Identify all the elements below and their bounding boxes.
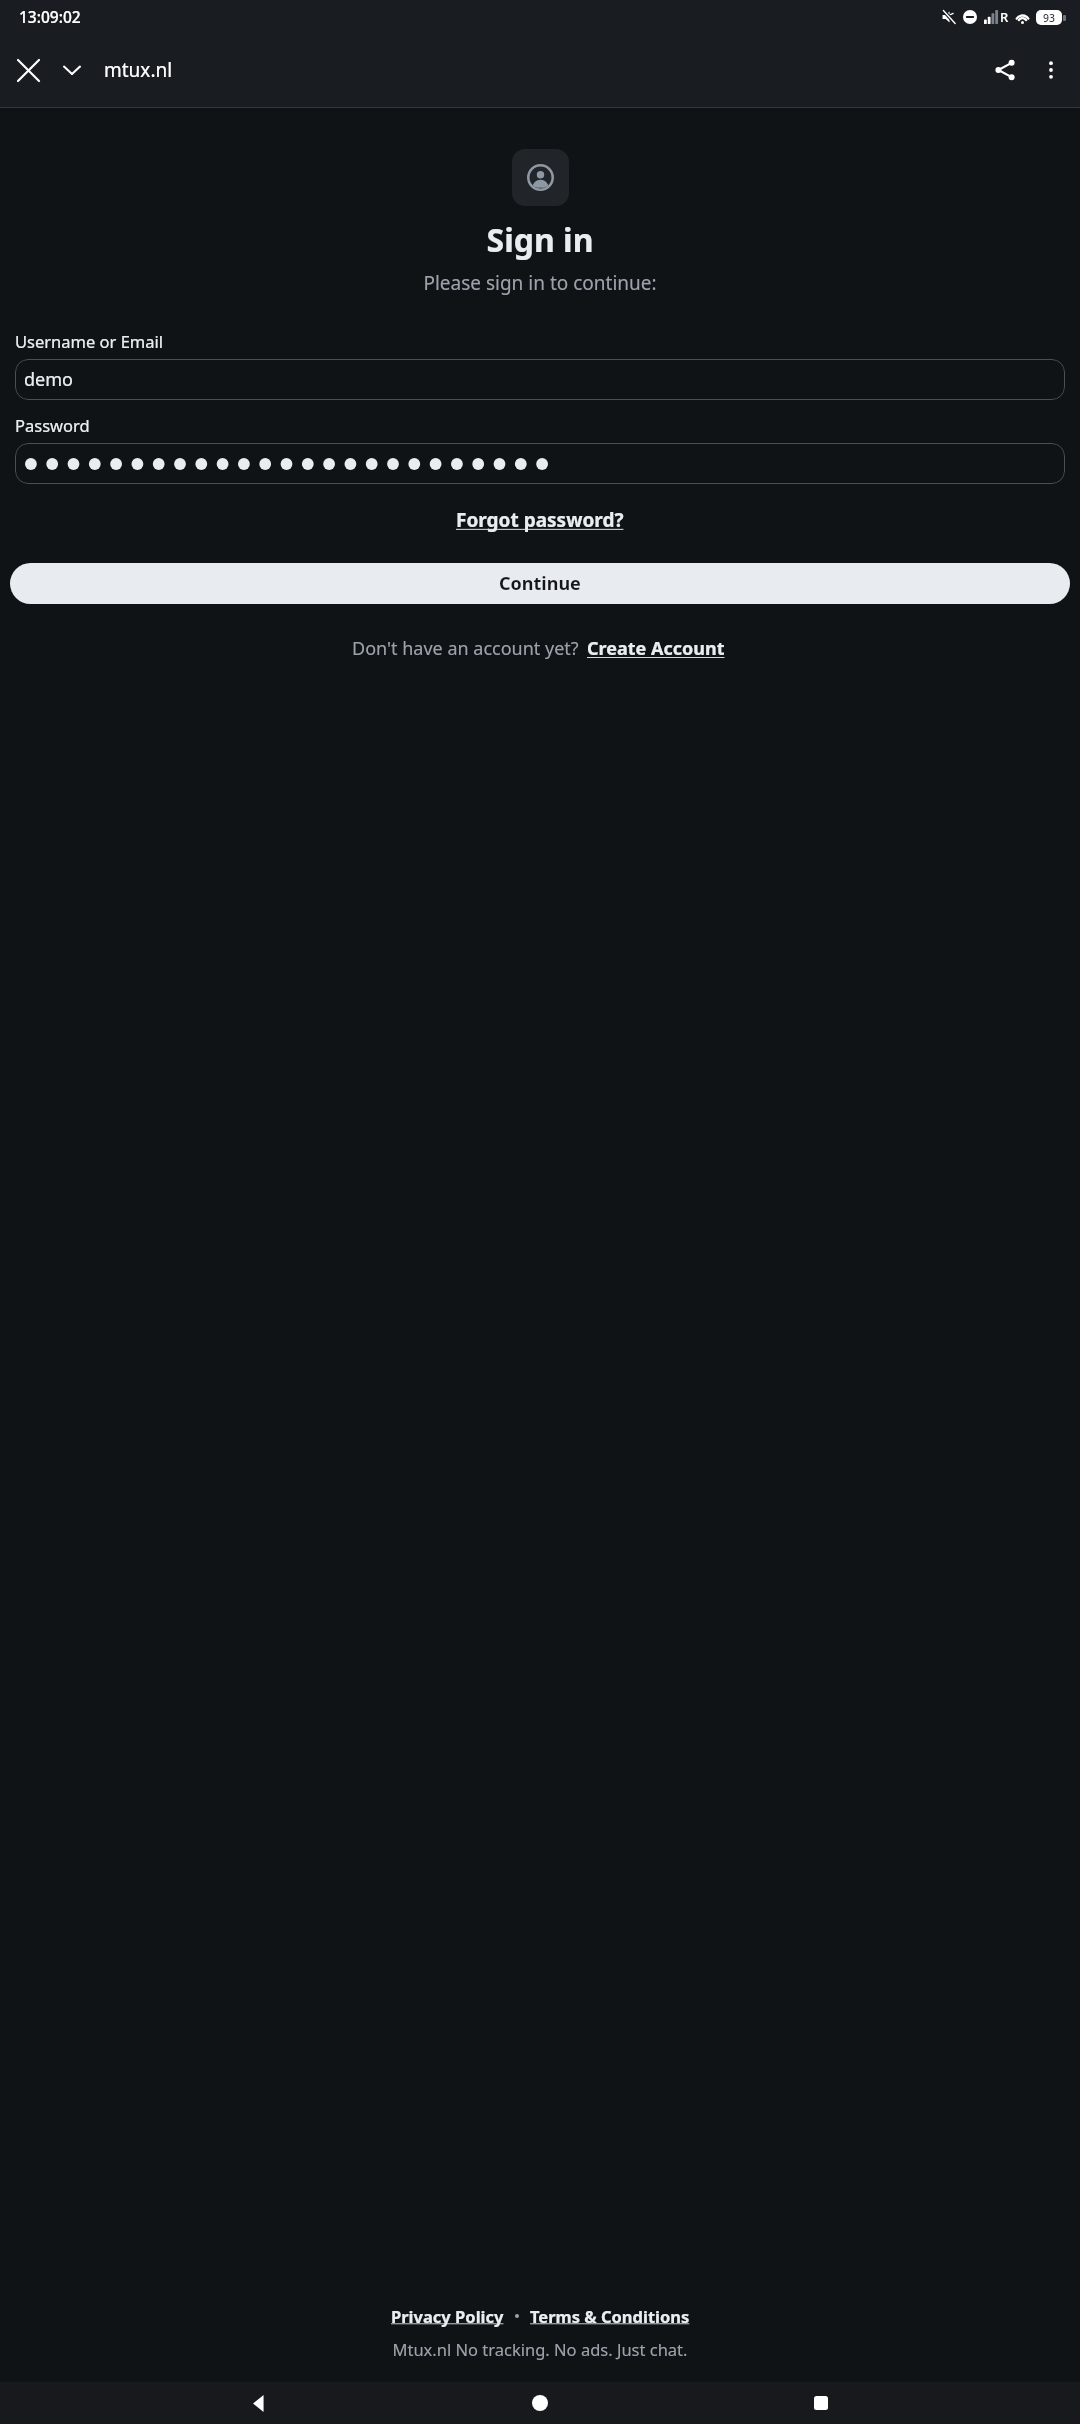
staticText: 13:09:02 — [19, 6, 81, 27]
staticText: Mtux.nl No tracking. No ads. Just chat. — [0, 2338, 1080, 2360]
button[interactable]: Create Account — [584, 633, 728, 664]
staticText: Terms & Conditions — [530, 2305, 690, 2327]
button[interactable]: Home — [518, 2382, 562, 2424]
staticText: Forgot password? — [456, 507, 624, 533]
button[interactable]: Share — [982, 47, 1028, 93]
staticText: Sign in — [0, 218, 1080, 262]
button[interactable]: Continue — [10, 563, 1070, 604]
button[interactable]: demo — [15, 359, 1065, 400]
button[interactable]: Recents — [799, 2382, 843, 2424]
button[interactable]: Back — [237, 2382, 281, 2424]
button[interactable]: Forgot password? — [450, 503, 630, 537]
staticText: demo — [24, 367, 73, 392]
button[interactable]: Privacy Policy — [388, 2302, 507, 2330]
staticText: Don't have an account yet? — [352, 636, 579, 661]
button[interactable]: Close — [6, 48, 50, 92]
button[interactable]: Collapse — [50, 48, 94, 92]
staticText: 93 — [1043, 11, 1056, 25]
button[interactable]: More options — [1028, 47, 1074, 93]
staticText: Privacy Policy — [391, 2305, 504, 2327]
staticText: Password — [15, 414, 90, 436]
staticText: mtux.nl — [104, 57, 173, 83]
button[interactable] — [15, 443, 1065, 484]
staticText: Please sign in to continue: — [0, 270, 1080, 296]
staticText: Username or Email — [15, 330, 164, 352]
staticText: Create Account — [587, 636, 725, 661]
button[interactable]: Terms & Conditions — [527, 2302, 693, 2330]
staticText: Continue — [499, 571, 581, 596]
staticText: R — [1000, 8, 1009, 26]
